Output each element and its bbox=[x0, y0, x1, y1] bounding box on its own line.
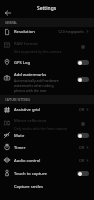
staticText: Audio control bbox=[14, 158, 41, 164]
button[interactable] bbox=[0, 116, 94, 133]
staticText: Off bbox=[79, 158, 84, 163]
button[interactable] bbox=[0, 167, 94, 179]
button[interactable] bbox=[0, 142, 94, 154]
button[interactable]: Toggle bbox=[77, 133, 89, 138]
staticText: Automatically add hardware watermarks wh… bbox=[14, 78, 59, 98]
staticText: Touch to capture bbox=[14, 171, 47, 177]
button[interactable] bbox=[0, 38, 94, 56]
staticText: RAW format bbox=[14, 41, 38, 47]
button[interactable]: Back bbox=[2, 7, 14, 19]
staticText: 12.0 megapixels bbox=[58, 29, 84, 34]
button[interactable]: Toggle bbox=[77, 77, 89, 82]
staticText: CAPTURE SETTINGS bbox=[5, 98, 31, 102]
button[interactable] bbox=[0, 104, 94, 116]
staticText: Add watermarks bbox=[14, 72, 47, 78]
staticText: Mirror reflection bbox=[14, 118, 47, 124]
button[interactable] bbox=[0, 56, 94, 68]
button[interactable]: Toggle bbox=[77, 171, 89, 176]
staticText: Timer bbox=[14, 145, 26, 151]
staticText: Off bbox=[79, 145, 84, 150]
staticText: Settings bbox=[37, 5, 57, 12]
staticText: Assistive grid bbox=[14, 107, 40, 113]
button[interactable] bbox=[0, 180, 94, 192]
staticText: Mute bbox=[14, 133, 25, 139]
button[interactable]: Toggle bbox=[77, 121, 89, 126]
staticText: Only works with the front camera bbox=[14, 126, 68, 131]
button[interactable] bbox=[0, 26, 94, 39]
button[interactable]: Toggle bbox=[77, 44, 89, 49]
button[interactable] bbox=[0, 69, 94, 94]
staticText: Capture smiles bbox=[14, 184, 44, 190]
staticText: Off bbox=[79, 107, 84, 112]
staticText: Resolution bbox=[14, 29, 35, 35]
button[interactable]: Toggle bbox=[77, 60, 89, 65]
staticText: GPS Log bbox=[14, 60, 31, 66]
staticText: Not supported by this camera bbox=[14, 49, 62, 54]
button[interactable] bbox=[0, 155, 94, 167]
button[interactable] bbox=[0, 130, 94, 142]
staticText: GENERAL bbox=[5, 21, 17, 25]
